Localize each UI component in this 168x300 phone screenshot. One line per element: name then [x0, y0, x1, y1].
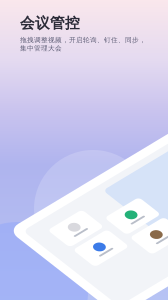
staticText: 拖拽调整视频，开启轮询、钉住、同步，集中管理大会: [20, 36, 146, 52]
staticText: 会议管控: [20, 14, 80, 32]
